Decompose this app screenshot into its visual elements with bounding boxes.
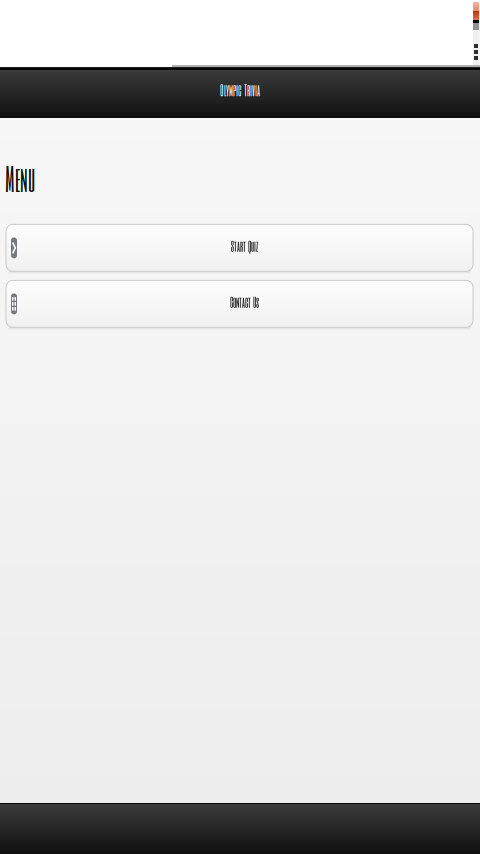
staticText: Olympic Trivia xyxy=(220,81,260,99)
button[interactable]: Start Quiz xyxy=(6,224,473,273)
staticText: Menu xyxy=(5,158,35,198)
staticText: Contact Us xyxy=(230,293,259,311)
button[interactable]: Contact Us xyxy=(6,280,473,329)
staticText: Start Quiz xyxy=(231,237,258,255)
